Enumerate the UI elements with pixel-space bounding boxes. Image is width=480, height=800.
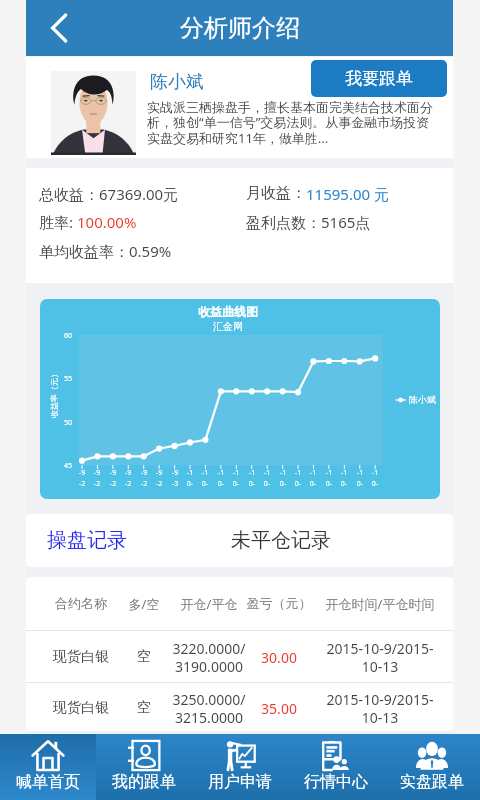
staticText: -1	[369, 468, 381, 478]
staticText: 0-	[369, 479, 381, 489]
button[interactable]: 行情中心	[288, 734, 384, 800]
staticText: 实战派三栖操盘手，擅长基本面完美结合技术面分析，独创“单一信号”交易法则。从事金…	[147, 99, 439, 147]
staticText: 100.00%	[77, 212, 137, 232]
staticText: 胜率:	[39, 212, 77, 232]
staticText: 用户申请	[208, 772, 272, 792]
staticText: -1	[199, 468, 211, 478]
button[interactable]: 我的跟单	[96, 734, 192, 800]
staticText: 0-	[184, 479, 196, 489]
staticText: -1	[292, 468, 304, 478]
staticText: 50	[56, 418, 72, 428]
staticText: 0-	[261, 479, 273, 489]
staticText: -9	[107, 468, 119, 478]
staticText: 0-	[215, 479, 227, 489]
staticText: -1	[261, 468, 273, 478]
staticText: -1	[354, 468, 366, 478]
staticText: 0-	[246, 479, 258, 489]
staticText: 合约名称	[44, 595, 118, 630]
staticText: 2015-10-9/2015- 10-13	[318, 690, 442, 731]
staticText: 多/空	[119, 595, 169, 630]
button[interactable]: 用户申请	[192, 734, 288, 800]
staticText: -9	[91, 468, 103, 478]
staticText: 0-	[230, 479, 242, 489]
staticText: 操盘记录	[47, 528, 127, 553]
staticText: 60	[56, 331, 72, 341]
button[interactable]: 实盘跟单	[384, 734, 480, 800]
staticText: 总收益：67369.00元	[39, 184, 179, 204]
staticText: 0-	[199, 479, 211, 489]
button[interactable]: Back	[36, 0, 82, 56]
staticText: -9	[76, 468, 88, 478]
staticText: 收益率（元）	[49, 370, 59, 418]
staticText: 我的跟单	[112, 772, 176, 792]
staticText: 陈小斌	[150, 71, 204, 94]
staticText: -2	[153, 479, 165, 489]
staticText: 开仓时间/平仓时间	[318, 595, 442, 630]
staticText: 现货白银	[44, 699, 118, 731]
staticText: 3220.0000/ 3190.0000	[170, 639, 248, 682]
staticText: 0-	[354, 479, 366, 489]
staticText: 35.00	[240, 699, 318, 731]
staticText: -1	[307, 468, 319, 478]
staticText: 陈小斌	[409, 394, 436, 405]
button[interactable]: 我要跟单	[311, 60, 447, 97]
staticText: 喊单首页	[16, 772, 80, 792]
staticText: -2	[91, 479, 103, 489]
staticText: -9	[138, 468, 150, 478]
staticText: 0-	[307, 479, 319, 489]
staticText: -1	[338, 468, 350, 478]
staticText: 盈亏（元）	[240, 595, 318, 630]
staticText: 0-	[323, 479, 335, 489]
staticText: 55	[56, 374, 72, 384]
staticText: -9	[122, 468, 134, 478]
staticText: 2015-10-9/2015- 10-13	[318, 639, 442, 682]
staticText: 单均收益率：0.59%	[39, 241, 172, 261]
staticText: -2	[107, 479, 119, 489]
staticText: 收益曲线图	[40, 304, 416, 319]
staticText: -3	[169, 479, 181, 489]
staticText: -9	[169, 468, 181, 478]
button[interactable]: 喊单首页	[0, 734, 96, 800]
staticText: 0-	[292, 479, 304, 489]
staticText: 开仓/平仓	[170, 595, 248, 630]
staticText: -1	[277, 468, 289, 478]
staticText: 未平仓记录	[231, 528, 331, 553]
staticText: 空	[119, 699, 169, 731]
staticText: 汇金网	[40, 320, 416, 333]
staticText: -9	[153, 468, 165, 478]
staticText: 0-	[338, 479, 350, 489]
button[interactable]: 未平仓记录	[206, 514, 355, 567]
staticText: -2	[138, 479, 150, 489]
staticText: 现货白银	[44, 648, 118, 682]
staticText: 月收益：	[246, 184, 306, 203]
staticText: -1	[215, 468, 227, 478]
staticText: -1	[230, 468, 242, 478]
staticText: -1	[246, 468, 258, 478]
staticText: 实盘跟单	[400, 772, 464, 792]
staticText: 0-	[277, 479, 289, 489]
staticText: 行情中心	[304, 772, 368, 792]
staticText: 分析师介绍	[180, 13, 300, 43]
staticText: 3250.0000/ 3215.0000	[170, 690, 248, 731]
staticText: 空	[119, 648, 169, 682]
staticText: -1	[323, 468, 335, 478]
staticText: 盈利点数：5165点	[246, 212, 371, 232]
staticText: -2	[122, 479, 134, 489]
button[interactable]: 操盘记录	[26, 514, 206, 567]
staticText: 11595.00 元	[306, 184, 389, 204]
staticText: -2	[76, 479, 88, 489]
staticText: 我要跟单	[345, 68, 413, 89]
staticText: 45	[56, 461, 72, 471]
staticText: -1	[184, 468, 196, 478]
staticText: 30.00	[240, 648, 318, 682]
